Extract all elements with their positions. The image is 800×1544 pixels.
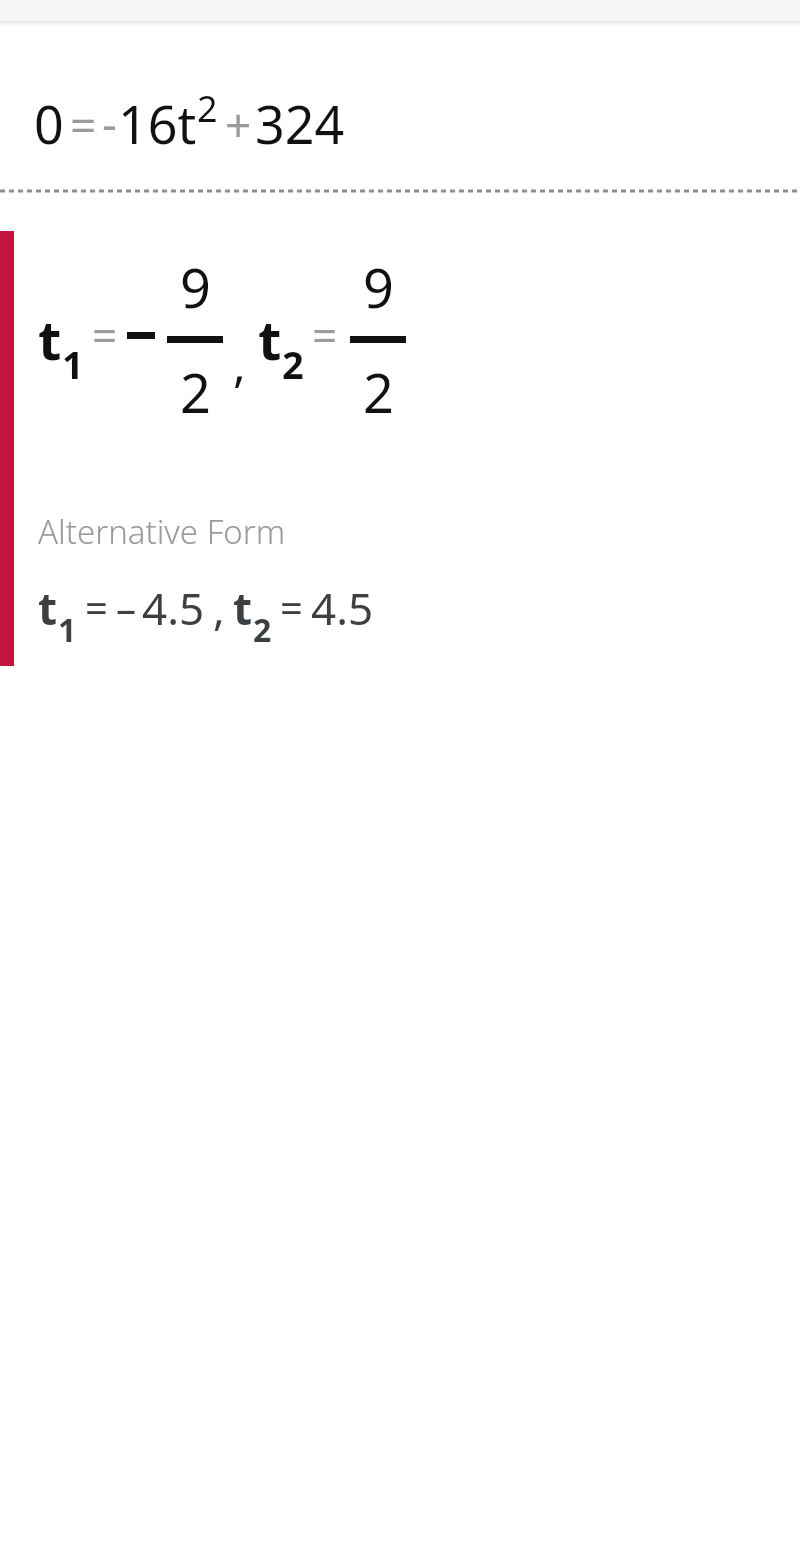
staticText: 2: [282, 338, 304, 390]
staticText: ,: [213, 578, 225, 638]
button[interactable]: t: [0, 223, 800, 453]
staticText: -: [102, 91, 117, 154]
staticText: =: [85, 580, 108, 634]
staticText: ,: [233, 331, 246, 396]
staticText: t: [258, 302, 282, 376]
staticText: 1: [58, 608, 77, 652]
staticText: =: [70, 93, 97, 156]
staticText: t: [233, 578, 253, 638]
staticText: t: [38, 578, 58, 638]
staticText: 2: [253, 608, 272, 652]
staticText: t: [38, 302, 62, 376]
staticText: Alternative Form: [38, 509, 286, 554]
staticText: =: [92, 305, 118, 365]
staticText: 324: [255, 88, 345, 159]
staticText: 2: [197, 84, 218, 133]
staticText: 9: [363, 250, 394, 324]
staticText: 2: [180, 355, 211, 429]
staticText: 1: [62, 338, 84, 390]
staticText: +: [225, 93, 252, 156]
staticText: 4.5: [142, 578, 205, 638]
staticText: =: [312, 305, 338, 365]
staticText: 9: [180, 250, 211, 324]
staticText: 0: [34, 88, 64, 159]
staticText: 16t: [118, 88, 197, 159]
staticText: 2: [363, 355, 394, 429]
staticText: 4.5: [311, 578, 374, 638]
staticText: =: [280, 580, 303, 634]
button[interactable]: 0: [0, 26, 800, 189]
staticText: –: [116, 580, 136, 634]
button[interactable]: Alternative Form: [0, 509, 800, 638]
